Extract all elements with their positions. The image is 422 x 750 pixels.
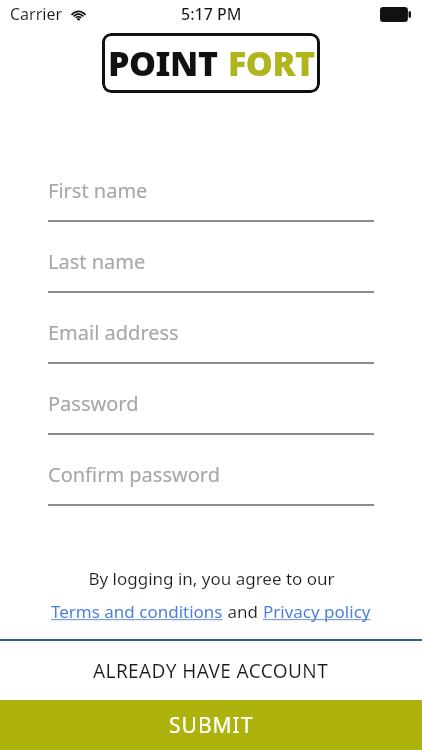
button[interactable]: Email address (48, 302, 374, 373)
staticText: ALREADY HAVE ACCOUNT (93, 658, 329, 684)
button[interactable]: POINT (102, 33, 320, 93)
staticText: Confirm password (48, 461, 220, 488)
staticText: Password (48, 390, 139, 417)
button[interactable]: Confirm password (48, 444, 374, 515)
button[interactable]: Privacy policy (263, 600, 371, 623)
staticText: By logging in, you agree to our (88, 567, 335, 590)
button[interactable]: Last name (48, 231, 374, 302)
staticText: Terms and conditions (51, 600, 223, 623)
staticText: and (223, 600, 263, 623)
staticText: SUBMIT (169, 711, 254, 740)
staticText: Last name (48, 248, 146, 275)
button[interactable]: ALREADY HAVE ACCOUNT (0, 641, 422, 700)
button[interactable]: Terms and conditions (51, 600, 223, 623)
staticText: Carrier (10, 3, 63, 25)
button[interactable]: Password (48, 373, 374, 444)
other: Wi-Fi signal (70, 8, 87, 21)
staticText: Privacy policy (263, 600, 371, 623)
staticText: FORT (228, 40, 315, 86)
button[interactable]: First name (48, 160, 374, 231)
button[interactable]: SUBMIT (0, 700, 422, 750)
staticText: 5:17 PM (181, 3, 242, 25)
staticText: First name (48, 177, 148, 204)
staticText: Email address (48, 319, 179, 346)
staticText: POINT (108, 40, 218, 86)
other: Battery full (380, 7, 411, 22)
